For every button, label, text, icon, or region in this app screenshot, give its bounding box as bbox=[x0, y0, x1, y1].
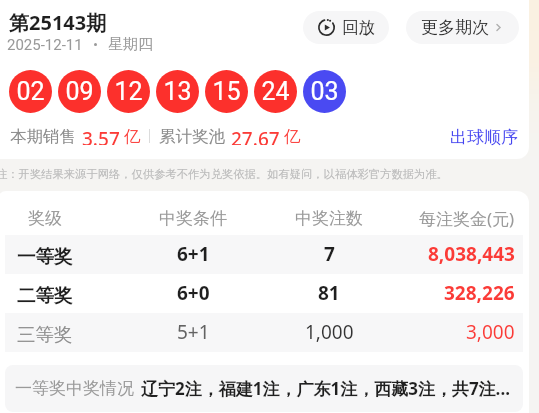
staticText: 一等奖 bbox=[17, 245, 73, 268]
staticText: 24 bbox=[261, 77, 290, 106]
button[interactable]: 二等奖 bbox=[5, 274, 523, 313]
staticText: 6+1 bbox=[177, 241, 210, 267]
button[interactable]: 一等奖中奖情况 bbox=[5, 365, 523, 412]
staticText: 02 bbox=[16, 77, 45, 106]
staticText: 亿 bbox=[284, 126, 301, 145]
staticText: 辽宁2注，福建1注，广东1注，西藏3注，共7注... bbox=[141, 377, 510, 400]
staticText: 注：开奖结果来源于网络，仅供参考不作为兑奖依据。如有疑问，以福体彩官方数据为准。 bbox=[0, 167, 448, 181]
staticText: 7 bbox=[324, 241, 335, 267]
staticText: 03 bbox=[310, 77, 339, 106]
staticText: 奖级 bbox=[28, 208, 62, 229]
button[interactable]: 回放 bbox=[303, 11, 389, 44]
staticText: 亿 bbox=[124, 126, 141, 145]
button[interactable]: 一等奖 bbox=[5, 235, 523, 274]
button[interactable]: 更多期次 bbox=[406, 11, 519, 44]
staticText: 三等奖 bbox=[17, 323, 73, 346]
staticText: 3,000 bbox=[466, 319, 515, 345]
staticText: 12 bbox=[114, 77, 143, 106]
other: 回放 bbox=[318, 19, 335, 36]
button[interactable]: 出球顺序 bbox=[448, 125, 520, 150]
staticText: 中奖条件 bbox=[159, 208, 227, 229]
staticText: 每注奖金(元) bbox=[419, 207, 515, 230]
staticText: 星期四 bbox=[108, 35, 153, 54]
staticText: 81 bbox=[318, 280, 340, 306]
staticText: 5+1 bbox=[177, 319, 210, 345]
staticText: 本期销售 bbox=[10, 126, 76, 145]
staticText: 1,000 bbox=[305, 319, 354, 345]
staticText: 27.67 bbox=[231, 126, 280, 145]
staticText: 13 bbox=[163, 77, 192, 106]
staticText: 中奖注数 bbox=[295, 208, 363, 229]
staticText: 出球顺序 bbox=[450, 127, 518, 148]
staticText: 回放 bbox=[342, 17, 375, 38]
staticText: 09 bbox=[65, 77, 94, 106]
staticText: 15 bbox=[212, 77, 241, 106]
staticText: 328,226 bbox=[444, 280, 515, 306]
staticText: 累计奖池 bbox=[159, 126, 225, 145]
staticText: 3.57 bbox=[82, 126, 120, 145]
button[interactable]: 三等奖 bbox=[5, 313, 523, 352]
staticText: 更多期次 bbox=[421, 17, 489, 38]
staticText: 6+0 bbox=[177, 280, 210, 306]
staticText: 2025-12-11 bbox=[7, 36, 83, 54]
staticText: 一等奖中奖情况 bbox=[15, 378, 134, 399]
staticText: 第25143期 bbox=[9, 9, 107, 36]
staticText: 二等奖 bbox=[17, 284, 73, 307]
staticText: 8,038,443 bbox=[428, 241, 515, 267]
